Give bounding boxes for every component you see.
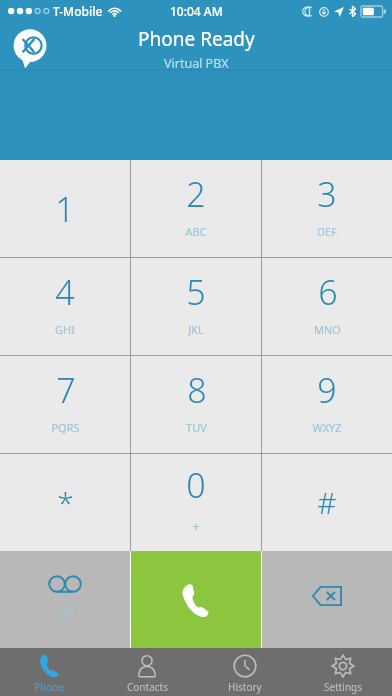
staticText: 8: [187, 367, 207, 413]
button[interactable]: *: [0, 454, 130, 551]
button[interactable]: 1: [0, 160, 130, 257]
button[interactable]: Call: [131, 551, 261, 648]
staticText: *: [57, 482, 74, 523]
staticText: Phone Ready: [138, 26, 255, 52]
staticText: 4: [55, 269, 75, 315]
staticText: 6: [318, 269, 338, 315]
staticText: DEF: [317, 224, 337, 239]
button[interactable]: 9: [262, 356, 392, 453]
staticText: 1: [55, 186, 75, 232]
button[interactable]: #: [262, 454, 392, 551]
staticText: 9: [317, 367, 337, 413]
button[interactable]: 4: [0, 258, 130, 355]
staticText: #: [317, 482, 337, 523]
staticText: WXYZ: [312, 420, 342, 435]
staticText: 3: [317, 171, 337, 217]
staticText: 7: [56, 367, 76, 413]
staticText: +: [192, 517, 200, 535]
staticText: Contacts: [127, 680, 168, 694]
button[interactable]: 6: [262, 258, 392, 355]
staticText: Phone: [34, 680, 65, 694]
staticText: 2: [186, 171, 206, 217]
button[interactable]: Backspace: [262, 551, 392, 648]
button[interactable]: Contacts: [98, 648, 196, 696]
button[interactable]: Settings: [294, 648, 392, 696]
staticText: JKL: [188, 322, 204, 337]
button[interactable]: 0: [131, 454, 261, 551]
staticText: MNO: [314, 322, 341, 337]
button[interactable]: 2: [131, 160, 261, 257]
staticText: ABC: [185, 224, 207, 239]
staticText: 5: [186, 269, 206, 315]
staticText: GHI: [55, 322, 75, 337]
button[interactable]: Voicemail: [0, 551, 130, 648]
staticText: TUV: [186, 420, 207, 435]
staticText: Virtual PBX: [164, 55, 229, 72]
staticText: 10:04 AM: [170, 3, 223, 19]
button[interactable]: Phone: [0, 648, 98, 696]
button[interactable]: History: [196, 648, 294, 696]
button[interactable]: 3: [262, 160, 392, 257]
button[interactable]: 7: [0, 356, 130, 453]
button[interactable]: 5: [131, 258, 261, 355]
staticText: VM: [57, 605, 74, 620]
staticText: Settings: [324, 680, 363, 694]
staticText: 0: [186, 462, 206, 508]
button[interactable]: 8: [131, 356, 261, 453]
staticText: History: [228, 680, 262, 694]
other: App logo: [10, 28, 50, 68]
staticText: T-Mobile: [53, 3, 103, 19]
staticText: PQRS: [51, 420, 80, 435]
